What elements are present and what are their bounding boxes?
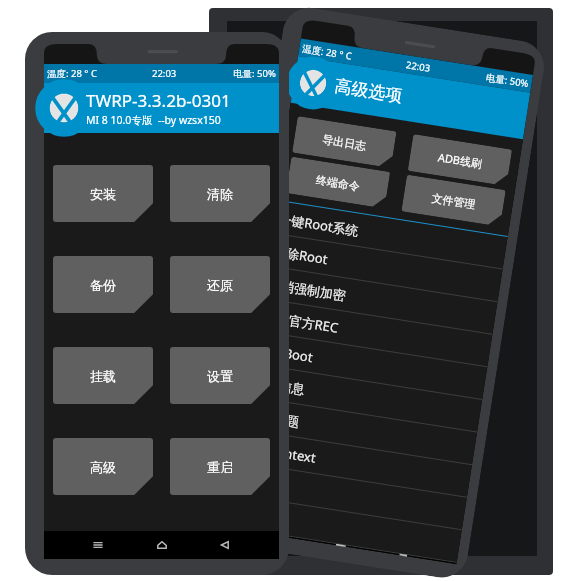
button[interactable]: 修复官方REC bbox=[255, 298, 492, 367]
button[interactable]: 设置 bbox=[170, 347, 270, 404]
button[interactable]: 电池信息 bbox=[245, 364, 482, 433]
button[interactable]: 挂载 bbox=[53, 347, 153, 404]
button[interactable] bbox=[224, 494, 462, 563]
button[interactable]: 一键Root系统 bbox=[270, 201, 508, 270]
staticText: ADB线刷 bbox=[437, 149, 484, 171]
button[interactable]: 安装 bbox=[53, 165, 153, 222]
button[interactable]: 备份 bbox=[53, 256, 153, 313]
staticText: 电量: 50% bbox=[233, 67, 276, 80]
staticText: 22:03 bbox=[152, 67, 177, 80]
button[interactable]: 文件管理 bbox=[401, 175, 506, 227]
staticText: 修复问题 bbox=[247, 406, 301, 430]
staticText: 温度: 28 ° C bbox=[47, 67, 97, 80]
staticText: 修复官方REC bbox=[262, 307, 340, 337]
button[interactable]: Back bbox=[393, 553, 413, 557]
button[interactable]: Home bbox=[331, 543, 351, 547]
staticText: TWRP-3.3.2b-0301 bbox=[86, 89, 231, 112]
staticText: 重启 bbox=[207, 459, 233, 475]
staticText: 终端命令 bbox=[315, 173, 361, 193]
staticText: 修复Context bbox=[242, 438, 317, 467]
staticText: 挂载 bbox=[90, 368, 116, 384]
button[interactable]: 还原 bbox=[170, 256, 270, 313]
staticText: 高级选项 bbox=[333, 75, 404, 107]
staticText: 安装 bbox=[90, 186, 116, 202]
staticText: 高级 bbox=[90, 459, 116, 475]
button[interactable]: Recents bbox=[268, 533, 288, 537]
button[interactable]: 解除Root bbox=[265, 233, 502, 302]
staticText: 修复Boot bbox=[257, 340, 314, 366]
button[interactable]: 导出日志 bbox=[292, 116, 397, 168]
button[interactable]: Back bbox=[215, 535, 235, 555]
button[interactable]: 清除 bbox=[170, 165, 270, 222]
button[interactable]: Recents bbox=[88, 535, 108, 555]
button[interactable]: 终端命令 bbox=[286, 156, 390, 208]
staticText: 电量: 50% bbox=[485, 71, 530, 90]
staticText: 清除 bbox=[207, 186, 233, 202]
button[interactable]: 修复Boot bbox=[250, 331, 487, 400]
staticText: 备份 bbox=[90, 277, 116, 293]
button[interactable]: 修复Context bbox=[235, 429, 472, 498]
staticText: 解除Root bbox=[272, 242, 329, 268]
button[interactable]: ADB线刷 bbox=[408, 134, 512, 186]
staticText: 设置 bbox=[207, 368, 233, 384]
button[interactable]: 重启 bbox=[170, 438, 270, 495]
staticText: 文件管理 bbox=[431, 191, 476, 211]
staticText: 还原 bbox=[207, 277, 233, 293]
staticText: 一键Root系统 bbox=[277, 209, 360, 240]
staticText: 导出日志 bbox=[321, 132, 367, 153]
button[interactable] bbox=[229, 461, 467, 530]
staticText: MI 8 10.0专版 --by wzsx150 bbox=[86, 113, 221, 127]
button[interactable]: 取消强制加密 bbox=[260, 266, 497, 335]
staticText: 22:03 bbox=[405, 58, 432, 75]
staticText: 取消强制加密 bbox=[267, 276, 347, 303]
button[interactable]: Home bbox=[152, 535, 172, 555]
button[interactable]: 修复问题 bbox=[240, 396, 477, 465]
staticText: 电池信息 bbox=[252, 373, 306, 397]
staticText: 温度: 28 ° C bbox=[301, 42, 353, 63]
button[interactable]: 高级 bbox=[53, 438, 153, 495]
